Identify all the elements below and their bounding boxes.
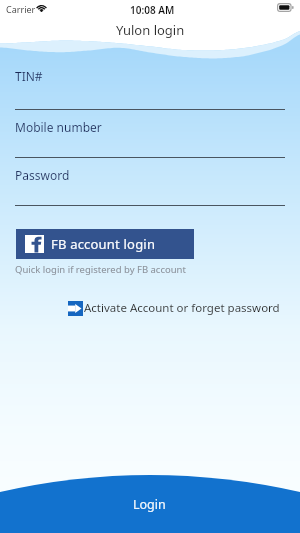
- staticText: Password: [15, 167, 70, 183]
- staticText: Activate Account or forget password: [84, 300, 280, 316]
- button[interactable]: Login: [0, 473, 300, 533]
- staticText: Login: [133, 496, 166, 513]
- button[interactable]: FB account login: [16, 229, 194, 259]
- staticText: 10:08 AM: [130, 3, 175, 17]
- staticText: Yulon login: [116, 21, 185, 39]
- staticText: Mobile number: [15, 119, 102, 135]
- staticText: Carrier: [6, 3, 36, 15]
- staticText: Quick login if registered by FB account: [15, 263, 186, 276]
- button[interactable]: Activate Account or forget password: [68, 300, 280, 316]
- staticText: TIN#: [15, 68, 43, 84]
- staticText: FB account login: [51, 235, 156, 253]
